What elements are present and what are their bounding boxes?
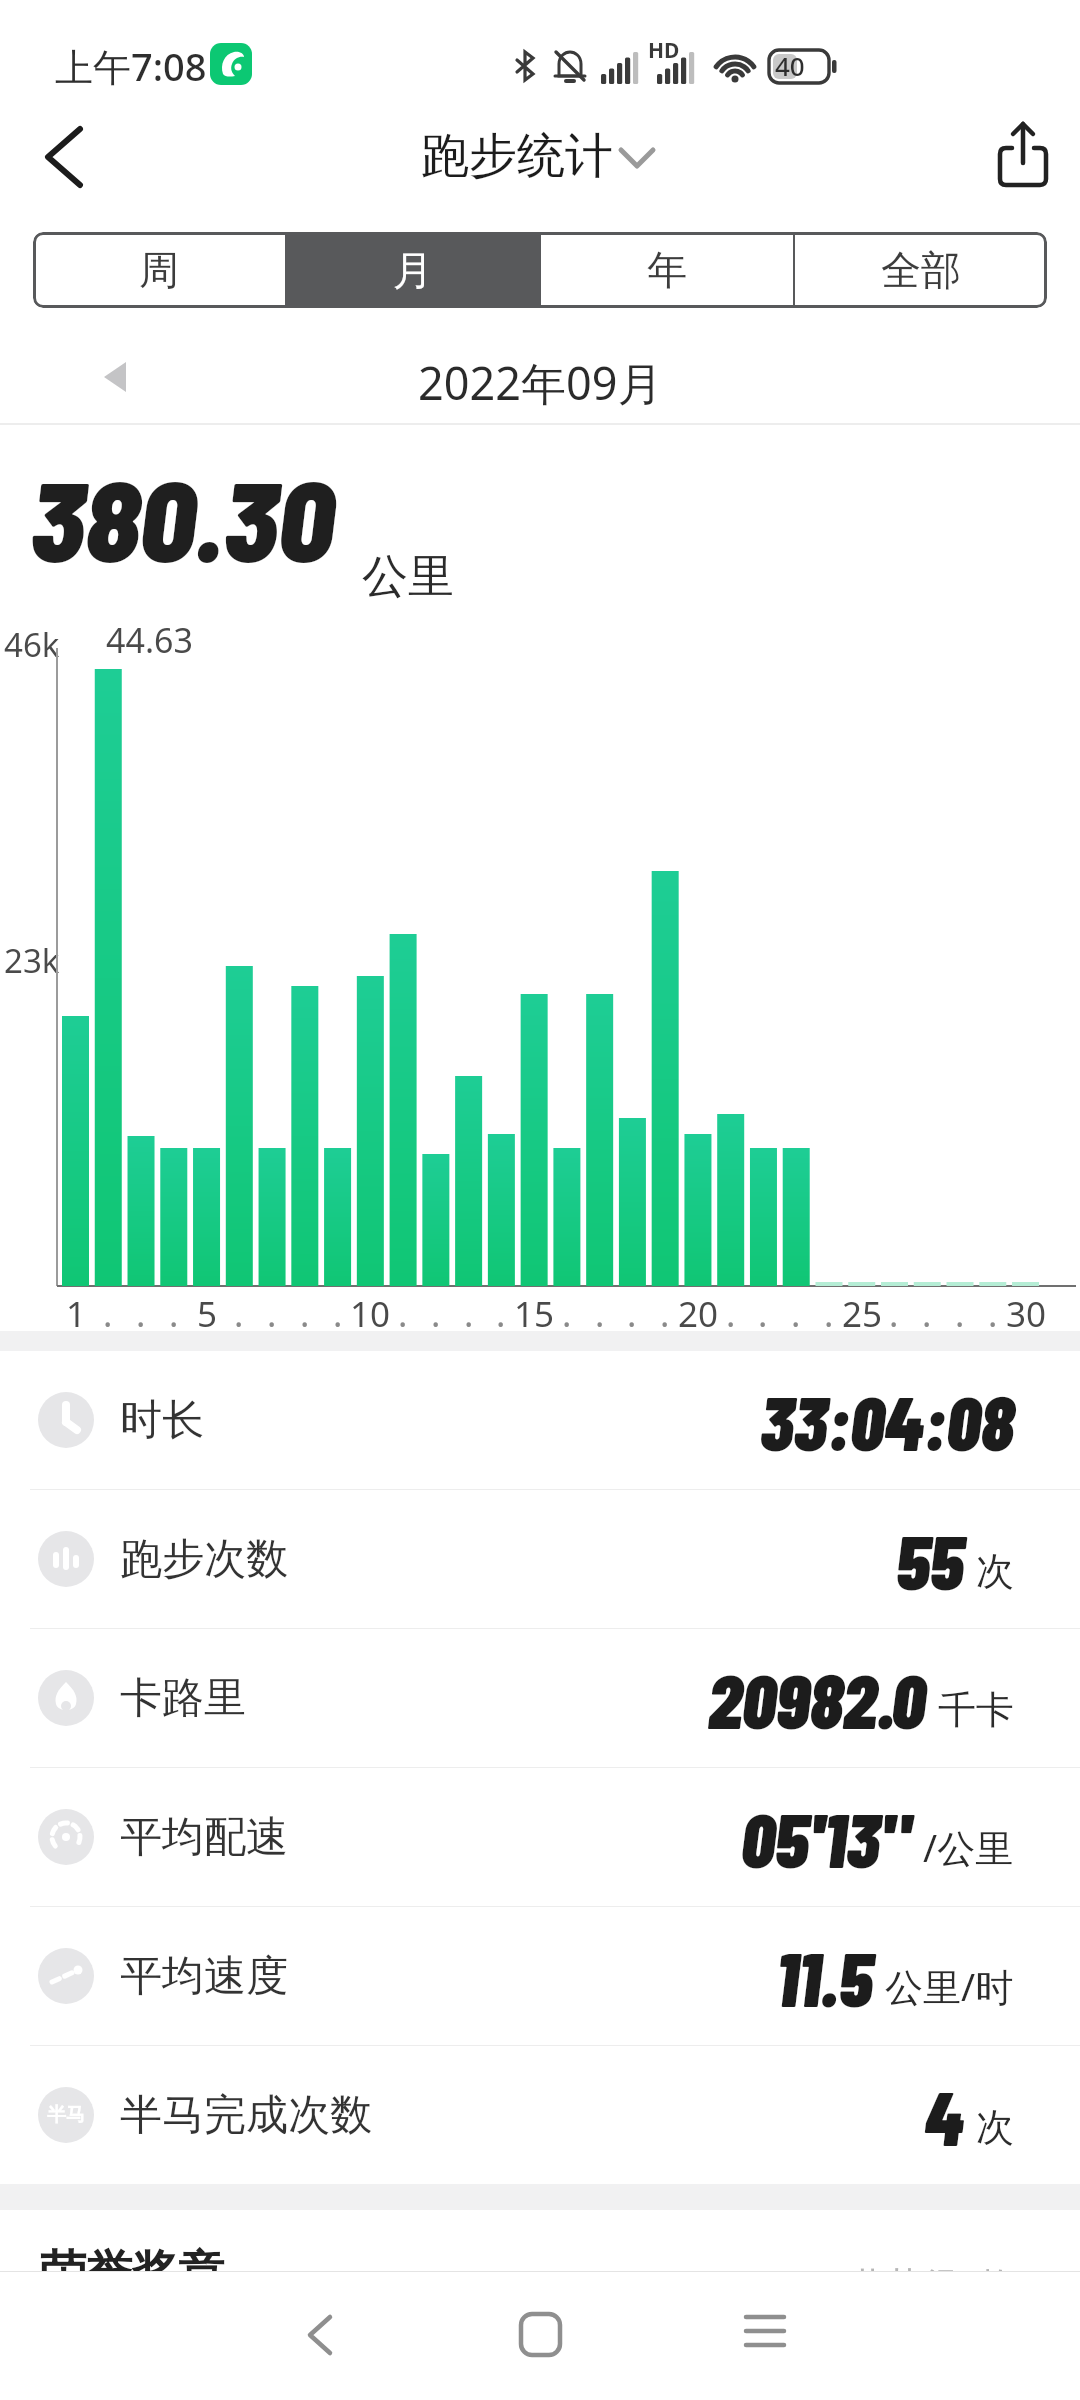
- staticText: 23k: [4, 938, 60, 983]
- button[interactable]: 卡路里: [0, 1629, 1080, 1767]
- staticText: 4: [924, 2070, 964, 2161]
- staticText: .: [627, 1290, 637, 1334]
- staticText: 跑步统计: [421, 126, 613, 186]
- staticText: 15: [514, 1290, 555, 1334]
- staticText: .: [824, 1290, 834, 1334]
- staticText: .: [955, 1290, 965, 1334]
- staticText: 40: [775, 48, 805, 83]
- button[interactable]: 荣誉奖章: [0, 2243, 1080, 2303]
- button[interactable]: [725, 2295, 805, 2375]
- button[interactable]: 平均速度: [0, 1907, 1080, 2045]
- button[interactable]: 周: [33, 232, 285, 308]
- staticText: 共获得4枚: [850, 2260, 1015, 2309]
- staticText: .: [234, 1290, 244, 1334]
- staticText: .: [300, 1290, 310, 1334]
- staticText: 380.30: [30, 450, 335, 584]
- staticText: 千卡: [938, 1686, 1014, 1734]
- staticText: .: [464, 1290, 474, 1334]
- staticText: .: [333, 1290, 343, 1334]
- staticText: 月: [393, 245, 433, 295]
- staticText: 年: [647, 245, 687, 295]
- staticText: 全部: [881, 245, 961, 295]
- staticText: 荣誉奖章: [40, 2244, 224, 2302]
- staticText: 1: [66, 1290, 87, 1334]
- staticText: 平均速度: [120, 1950, 288, 2003]
- staticText: 公里: [362, 548, 454, 606]
- staticText: .: [726, 1290, 736, 1334]
- staticText: 半马: [47, 2103, 85, 2127]
- staticText: /公里: [923, 1821, 1014, 1873]
- staticText: .: [169, 1290, 179, 1334]
- staticText: .: [562, 1290, 572, 1334]
- staticText: HD: [648, 36, 680, 65]
- staticText: .: [595, 1290, 605, 1334]
- staticText: 2022年09月: [418, 352, 663, 413]
- staticText: .: [398, 1290, 408, 1334]
- staticText: .: [758, 1290, 768, 1334]
- staticText: 5: [197, 1290, 218, 1334]
- button[interactable]: 全部: [795, 232, 1047, 308]
- button[interactable]: [985, 115, 1061, 199]
- staticText: 20: [678, 1290, 719, 1334]
- staticText: 上午7:08: [55, 40, 207, 92]
- staticText: 55: [896, 1514, 964, 1605]
- button[interactable]: [500, 2295, 580, 2375]
- staticText: 卡路里: [120, 1672, 246, 1725]
- staticText: .: [922, 1290, 932, 1334]
- staticText: 30: [1006, 1290, 1047, 1334]
- staticText: 44.63: [106, 617, 193, 663]
- staticText: 公里/时: [885, 1960, 1014, 2012]
- staticText: 次: [976, 1547, 1014, 1595]
- staticText: 10: [350, 1290, 391, 1334]
- staticText: 周: [139, 245, 179, 295]
- staticText: .: [496, 1290, 506, 1334]
- staticText: .: [267, 1290, 277, 1334]
- staticText: 05'13": [741, 1792, 911, 1883]
- staticText: 20982.0: [708, 1653, 926, 1744]
- button[interactable]: [90, 352, 146, 408]
- button[interactable]: 跑步统计: [421, 126, 659, 186]
- button[interactable]: 跑步次数: [0, 1490, 1080, 1628]
- button[interactable]: 月: [287, 232, 539, 308]
- staticText: .: [660, 1290, 670, 1334]
- staticText: 11.5: [776, 1931, 873, 2022]
- staticText: 46k: [4, 622, 60, 667]
- button[interactable]: [28, 115, 108, 199]
- staticText: 33:04:08: [760, 1375, 1014, 1466]
- staticText: 25: [842, 1290, 883, 1334]
- button[interactable]: 半马: [0, 2046, 1080, 2184]
- staticText: 平均配速: [120, 1811, 288, 1864]
- staticText: 时长: [120, 1394, 204, 1447]
- staticText: 次: [976, 2103, 1014, 2151]
- staticText: .: [136, 1290, 146, 1334]
- staticText: .: [431, 1290, 441, 1334]
- staticText: .: [889, 1290, 899, 1334]
- button[interactable]: [280, 2295, 360, 2375]
- button[interactable]: 年: [541, 232, 793, 308]
- staticText: .: [988, 1290, 998, 1334]
- button[interactable]: 时长: [0, 1351, 1080, 1489]
- staticText: 半马完成次数: [120, 2089, 372, 2142]
- staticText: 跑步次数: [120, 1533, 288, 1586]
- staticText: .: [103, 1290, 113, 1334]
- staticText: .: [791, 1290, 801, 1334]
- button[interactable]: 平均配速: [0, 1768, 1080, 1906]
